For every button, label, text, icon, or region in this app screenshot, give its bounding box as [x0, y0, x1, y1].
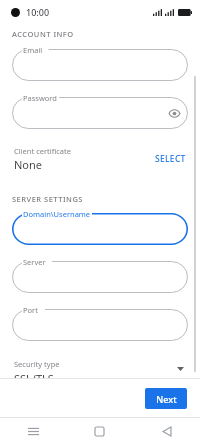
button[interactable]: Recent apps	[0, 418, 66, 444]
button[interactable]: SELECT	[153, 151, 188, 167]
staticText: SELECT	[155, 153, 186, 165]
button[interactable]: Back	[133, 418, 200, 444]
other: Expand security type	[174, 363, 186, 375]
button[interactable]: Email	[12, 49, 188, 81]
staticText: Password	[23, 93, 57, 103]
staticText: ACCOUNT INFO	[12, 29, 74, 39]
button[interactable]: Security type	[0, 359, 200, 378]
staticText: Security type	[14, 359, 60, 369]
button[interactable]: Server	[12, 261, 188, 293]
button[interactable]: Domain\Username	[12, 213, 188, 245]
staticText: Email	[23, 45, 43, 55]
button[interactable]: Next	[145, 388, 187, 409]
button[interactable]: Home	[66, 418, 133, 444]
staticText: 10:00	[26, 6, 50, 18]
staticText: SSL/TLS	[14, 371, 54, 378]
staticText: Port	[23, 305, 38, 315]
button[interactable]: Show password	[166, 105, 182, 121]
staticText: Server	[23, 257, 46, 267]
staticText: SERVER SETTINGS	[12, 194, 83, 204]
staticText: Domain\Username	[23, 209, 91, 219]
button[interactable]: Port	[12, 309, 188, 341]
staticText: Next	[156, 393, 177, 405]
button[interactable]: Client certificate	[0, 146, 200, 172]
staticText: None	[14, 157, 43, 172]
button[interactable]: Password	[12, 97, 188, 129]
staticText: Client certificate	[14, 146, 71, 156]
